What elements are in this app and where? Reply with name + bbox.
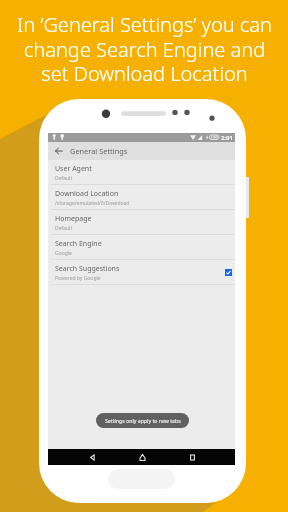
button[interactable]: Download Location bbox=[48, 185, 235, 210]
staticText: General Settings bbox=[70, 146, 128, 156]
button[interactable]: Search Suggestions checkbox bbox=[225, 269, 232, 276]
staticText: /storage/emulated/0/Download bbox=[55, 200, 130, 207]
button[interactable]: Home bbox=[135, 449, 149, 465]
staticText: In ‘General Settings’ you can change Sea… bbox=[17, 11, 272, 87]
staticText: Google bbox=[55, 250, 72, 257]
staticText: User Agent bbox=[55, 164, 92, 174]
staticText: Powered by Google bbox=[55, 275, 101, 282]
button[interactable]: Recents bbox=[185, 449, 199, 465]
button[interactable]: Search Engine bbox=[48, 235, 235, 260]
other: Navigate up bbox=[48, 142, 70, 160]
staticText: Download Location bbox=[55, 189, 119, 199]
staticText: Default bbox=[55, 225, 73, 232]
staticText: Homepage bbox=[55, 214, 92, 224]
button[interactable]: Search Suggestions bbox=[48, 260, 235, 285]
button[interactable]: Homepage bbox=[48, 210, 235, 235]
staticText: Search Suggestions bbox=[55, 264, 120, 274]
button[interactable]: Back bbox=[85, 449, 99, 465]
staticText: Search Engine bbox=[55, 239, 102, 249]
staticText: 2:01 bbox=[221, 134, 233, 142]
button[interactable]: User Agent bbox=[48, 160, 235, 185]
staticText: Settings only apply to new tabs bbox=[105, 417, 181, 424]
button[interactable]: Settings only apply to new tabs bbox=[96, 413, 189, 428]
button[interactable]: Navigate up bbox=[48, 142, 235, 160]
staticText: Default bbox=[55, 175, 73, 182]
